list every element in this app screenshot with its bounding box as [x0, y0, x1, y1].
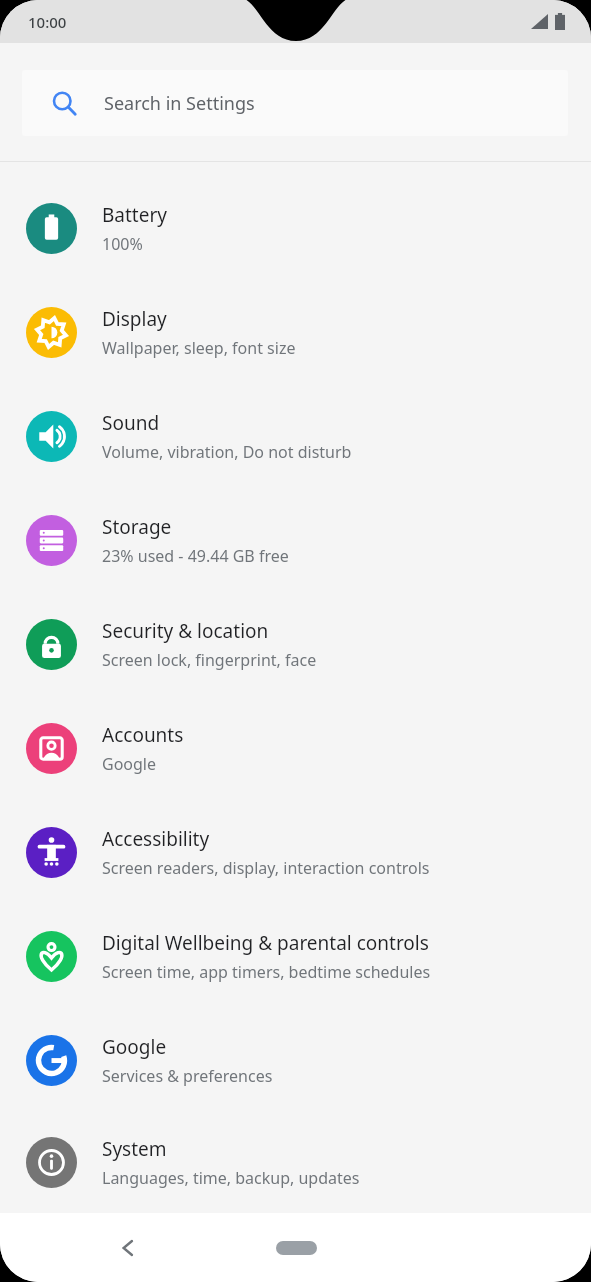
- staticText: Search in Settings: [104, 91, 255, 116]
- staticText: 10:00: [28, 12, 67, 32]
- staticText: 100%: [102, 233, 143, 255]
- staticText: Security & location: [102, 618, 269, 644]
- staticText: Wallpaper, sleep, font size: [102, 337, 296, 359]
- button[interactable]: Digital Wellbeing & parental controls: [0, 904, 591, 1008]
- staticText: Google: [102, 753, 157, 775]
- button[interactable]: Search in Settings: [22, 70, 568, 136]
- staticText: Screen lock, fingerprint, face: [102, 649, 317, 671]
- staticText: Digital Wellbeing & parental controls: [102, 930, 429, 956]
- staticText: System: [102, 1136, 167, 1162]
- button[interactable]: Accessibility: [0, 800, 591, 904]
- button[interactable]: Google: [0, 1008, 591, 1112]
- button[interactable]: Sound: [0, 384, 591, 488]
- button[interactable]: Security & location: [0, 592, 591, 696]
- button[interactable]: Battery: [0, 176, 591, 280]
- button[interactable]: Display: [0, 280, 591, 384]
- staticText: Accessibility: [102, 826, 210, 852]
- button[interactable]: Accounts: [0, 696, 591, 800]
- staticText: Google: [102, 1034, 167, 1060]
- staticText: Screen time, app timers, bedtime schedul…: [102, 961, 431, 983]
- button[interactable]: Home: [266, 1236, 326, 1260]
- staticText: Display: [102, 306, 167, 332]
- button[interactable]: Back: [100, 1220, 156, 1276]
- staticText: Storage: [102, 514, 172, 540]
- staticText: Volume, vibration, Do not disturb: [102, 441, 352, 463]
- staticText: 23% used - 49.44 GB free: [102, 545, 289, 567]
- button[interactable]: Storage: [0, 488, 591, 592]
- staticText: Battery: [102, 202, 167, 228]
- staticText: Languages, time, backup, updates: [102, 1167, 360, 1189]
- staticText: Accounts: [102, 722, 184, 748]
- button[interactable]: System: [0, 1112, 591, 1213]
- staticText: Sound: [102, 410, 160, 436]
- staticText: Services & preferences: [102, 1065, 273, 1087]
- staticText: Screen readers, display, interaction con…: [102, 857, 430, 879]
